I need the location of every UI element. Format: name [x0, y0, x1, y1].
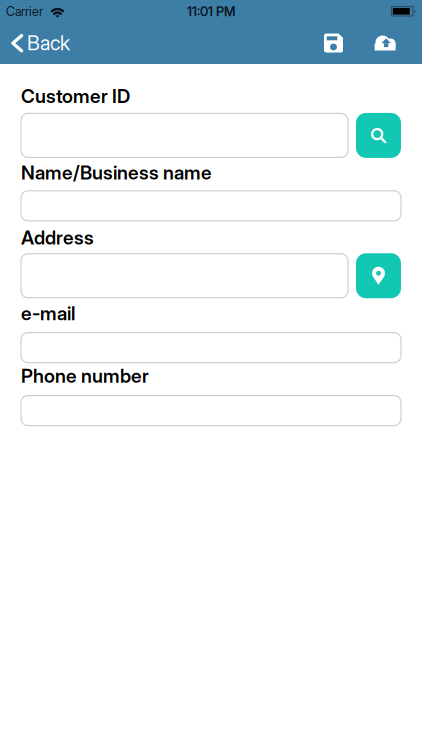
staticText: Phone number [21, 365, 149, 387]
staticText: Carrier [6, 4, 43, 19]
staticText: e-mail [21, 302, 75, 325]
staticText: Customer ID [21, 85, 130, 107]
button[interactable]: Back [11, 31, 70, 55]
button[interactable]: Search customer [356, 113, 401, 158]
staticText: Name/Business name [21, 161, 212, 184]
staticText: Address [21, 226, 94, 249]
button[interactable]: Save [324, 33, 343, 52]
button[interactable]: Locate address [356, 253, 401, 298]
staticText: 11:01 PM [187, 4, 235, 19]
button[interactable]: Upload [374, 35, 396, 50]
staticText: Back [27, 31, 70, 55]
